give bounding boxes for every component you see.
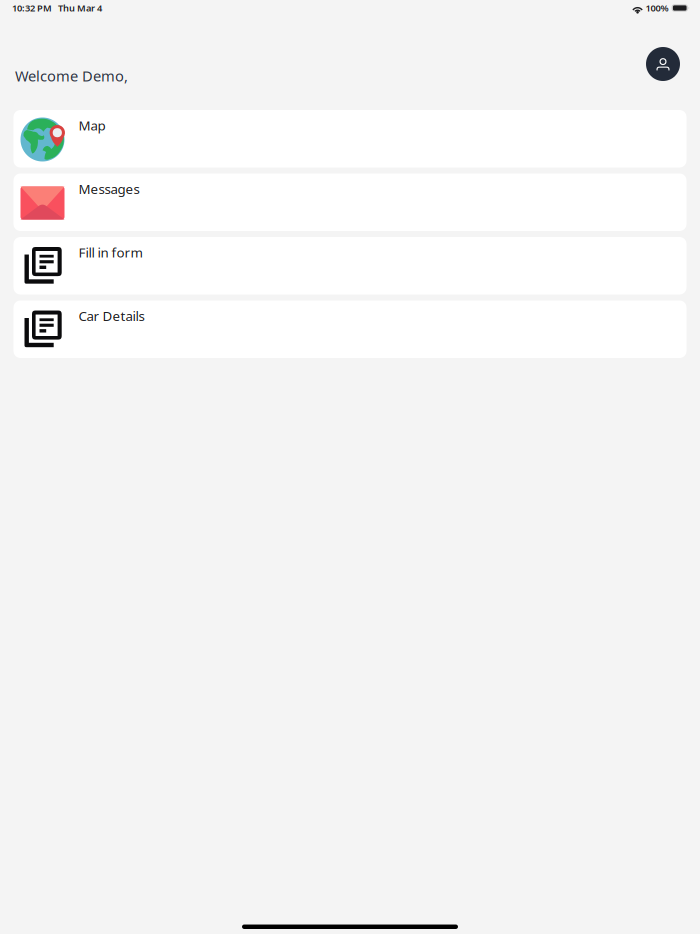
staticText: Messages [78, 180, 139, 198]
staticText: Thu Mar 4 [58, 2, 102, 14]
staticText: 10:32 PM [12, 2, 52, 14]
button[interactable]: Car Details [13, 300, 686, 358]
button[interactable]: Map [13, 110, 686, 167]
button[interactable]: Fill in form [13, 237, 686, 294]
staticText: 100% [646, 2, 669, 14]
staticText: Welcome Demo, [15, 66, 128, 85]
button[interactable]: Account [646, 47, 680, 81]
staticText: Car Details [78, 307, 144, 325]
staticText: Map [78, 116, 105, 134]
staticText: Fill in form [78, 243, 142, 261]
button[interactable]: Messages [13, 173, 686, 231]
